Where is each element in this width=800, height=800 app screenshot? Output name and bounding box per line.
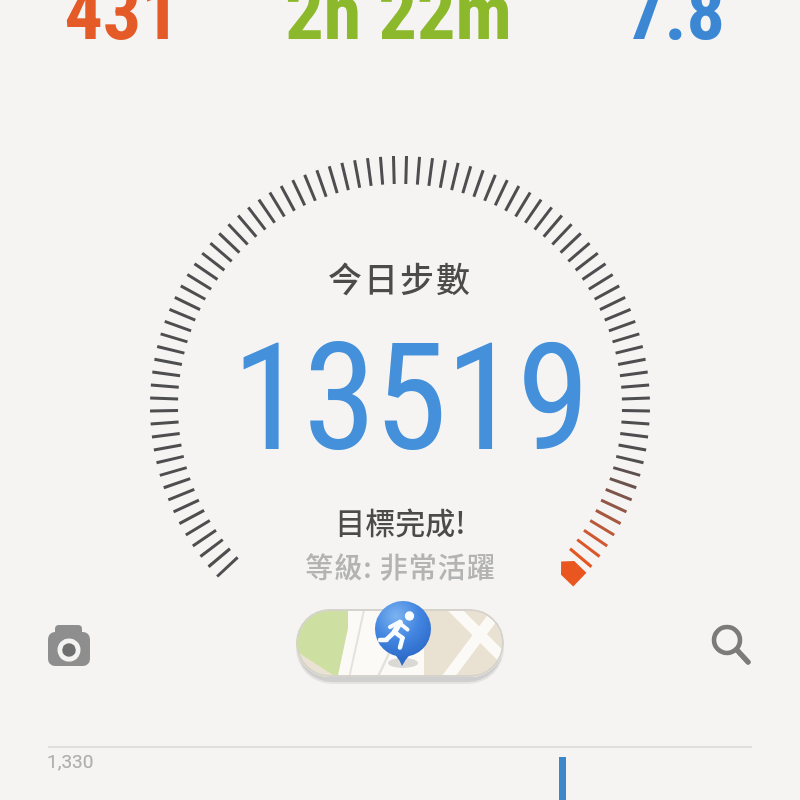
staticText: 431 <box>64 0 180 57</box>
staticText: 2h 22m <box>285 0 512 57</box>
staticText: 7.8 <box>626 0 725 57</box>
button[interactable] <box>698 610 760 672</box>
button[interactable] <box>296 609 504 677</box>
button[interactable] <box>38 614 100 676</box>
staticText: 等級: 非常活躍 <box>305 546 496 587</box>
staticText: 1,330 <box>47 750 94 772</box>
staticText: 目標完成! <box>335 499 466 542</box>
staticText: 13519 <box>232 312 588 485</box>
staticText: 今日步數 <box>328 253 472 302</box>
